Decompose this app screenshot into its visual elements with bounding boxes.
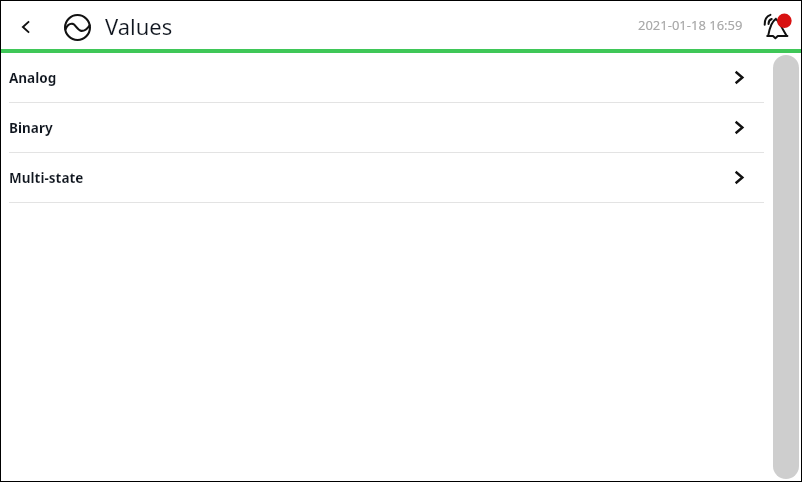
staticText: 2021-01-18 16:59 — [638, 16, 743, 34]
staticText: Analog — [9, 69, 57, 87]
button[interactable]: Back — [6, 7, 46, 47]
staticText: Values — [105, 11, 173, 41]
staticText: Multi-state — [9, 169, 84, 187]
button[interactable]: Notifications — [757, 4, 797, 44]
staticText: Binary — [9, 119, 53, 137]
button[interactable]: Analog — [1, 53, 801, 103]
button[interactable]: Multi-state — [1, 153, 801, 203]
button[interactable]: Binary — [1, 103, 801, 153]
